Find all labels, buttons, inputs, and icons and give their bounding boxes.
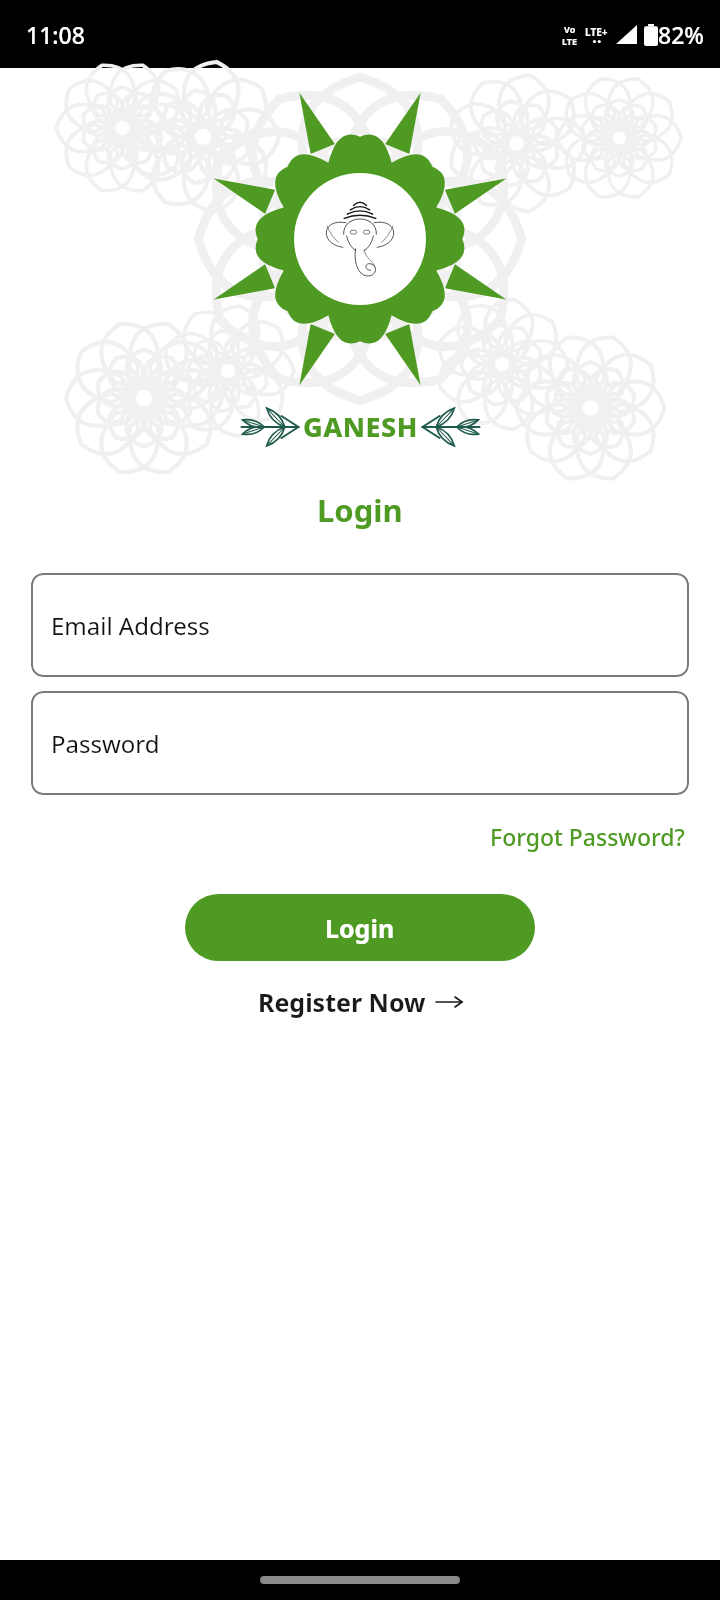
staticText: LTE+ [585,25,608,39]
staticText: Email Address [51,609,210,642]
staticText: Vo [564,23,576,35]
button[interactable]: Register Now [250,979,470,1025]
staticText: LTE [562,35,578,47]
staticText: Password [51,727,160,760]
staticText: Register Now [258,985,426,1019]
button[interactable]: Email Address [31,573,689,677]
staticText: Forgot Password? [490,821,685,852]
button[interactable]: Forgot Password? [486,817,689,856]
button[interactable]: Password [31,691,689,795]
staticText: Login [325,911,395,945]
staticText: GANESH [303,408,418,445]
staticText: 11:08 [26,19,85,50]
staticText: Login [317,489,403,531]
button[interactable]: Login [185,894,535,961]
staticText: 82% [658,19,704,50]
